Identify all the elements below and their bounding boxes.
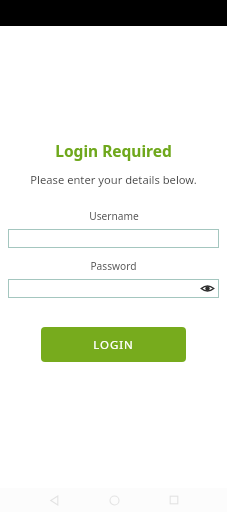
button[interactable]: Recent apps bbox=[153, 488, 195, 512]
button[interactable] bbox=[8, 229, 219, 248]
button[interactable]: Back bbox=[33, 488, 75, 512]
button[interactable]: Home bbox=[93, 488, 135, 512]
staticText: Password bbox=[90, 259, 137, 273]
staticText: Please enter your details below. bbox=[30, 172, 197, 187]
button[interactable]: LOGIN bbox=[41, 327, 186, 362]
button[interactable]: Show password bbox=[199, 280, 216, 297]
staticText: Login Required bbox=[55, 140, 172, 161]
staticText: LOGIN bbox=[93, 337, 134, 353]
staticText: Username bbox=[89, 209, 139, 223]
button[interactable]: Show password bbox=[8, 279, 219, 298]
